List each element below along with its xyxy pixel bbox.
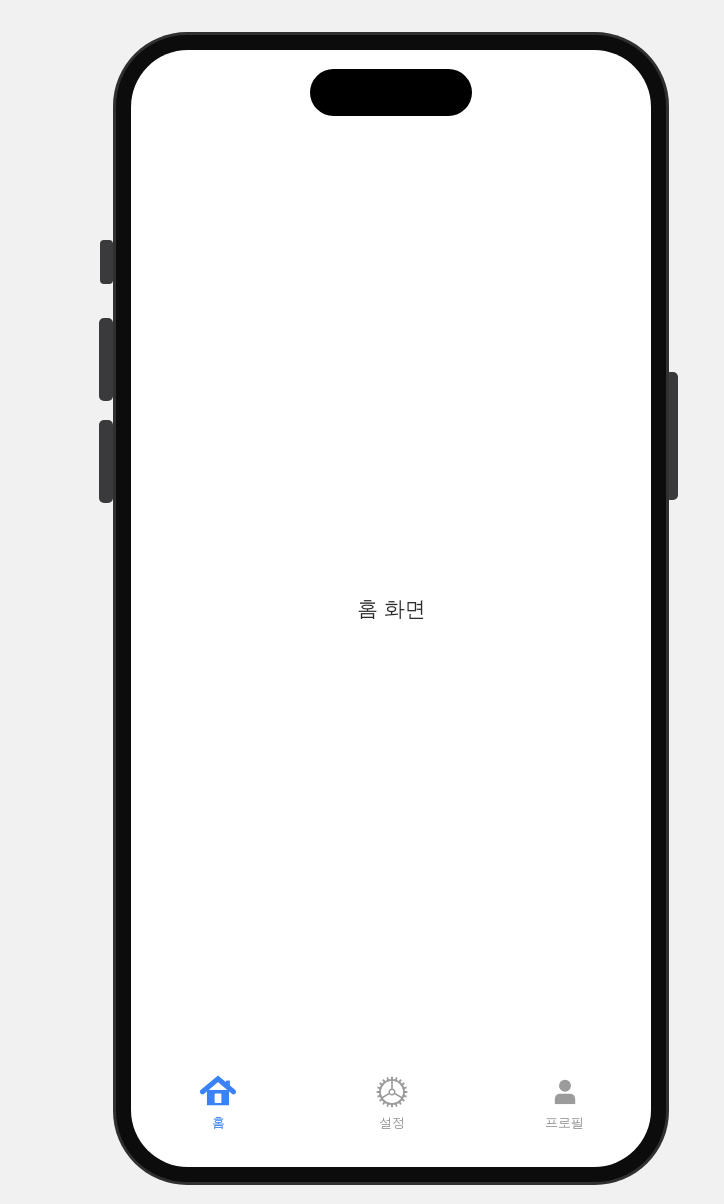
other: 설정 — [375, 1075, 409, 1109]
staticText: 설정 — [379, 1114, 405, 1130]
staticText: 홈 화면 — [357, 594, 426, 623]
staticText: 프로필 — [545, 1114, 584, 1130]
button[interactable]: 홈 — [131, 1059, 305, 1140]
other: 홈 — [201, 1075, 235, 1109]
staticText: 홈 — [212, 1114, 225, 1130]
button[interactable]: 프로필 — [478, 1059, 651, 1140]
other: 프로필 — [548, 1075, 582, 1109]
button[interactable]: 설정 — [305, 1059, 478, 1140]
